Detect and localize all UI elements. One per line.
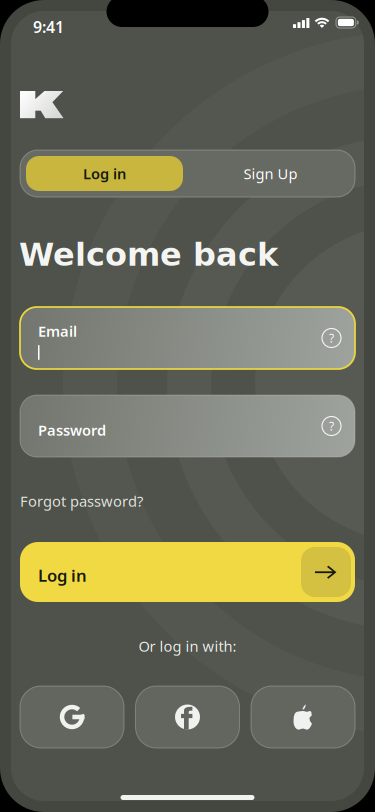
staticText: Welcome back — [19, 236, 278, 273]
button[interactable]: Sign Up — [192, 156, 349, 191]
button[interactable]: Continue with Facebook — [135, 686, 239, 748]
staticText: Log in — [83, 163, 126, 183]
staticText: Log in — [38, 564, 87, 587]
staticText: Or log in with: — [138, 636, 236, 656]
button[interactable]: Log in — [26, 156, 183, 191]
staticText: Forgot password? — [20, 491, 143, 511]
staticText: Sign Up — [243, 163, 297, 183]
button[interactable]: Continue with Apple — [251, 686, 355, 748]
button[interactable]: Log in — [20, 542, 355, 602]
button[interactable]: Email — [20, 307, 355, 369]
button[interactable]: Forgot password? — [20, 491, 144, 509]
staticText: ? — [329, 418, 334, 434]
staticText: ? — [329, 330, 334, 346]
staticText: 9:41 — [33, 16, 64, 38]
staticText: Email — [38, 321, 77, 341]
button[interactable]: Password — [20, 395, 355, 457]
button[interactable]: Continue with Google — [20, 686, 124, 748]
staticText: Password — [38, 420, 106, 440]
